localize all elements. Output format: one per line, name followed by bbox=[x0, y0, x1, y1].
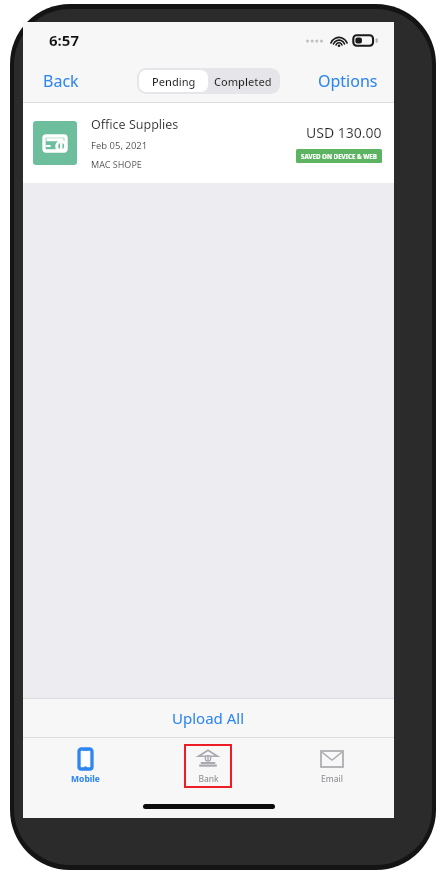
staticText: Feb 05, 2021 bbox=[91, 139, 148, 152]
staticText: SAVED ON DEVICE & WEB bbox=[301, 152, 377, 160]
staticText: MAC SHOPE bbox=[91, 158, 142, 170]
staticText: USD 130.00 bbox=[306, 123, 382, 142]
staticText: Completed bbox=[214, 74, 272, 89]
button[interactable]: Upload All bbox=[23, 698, 394, 738]
staticText: Office Supplies bbox=[91, 116, 179, 133]
button[interactable]: Options bbox=[304, 64, 394, 98]
staticText: Options bbox=[318, 70, 378, 92]
button[interactable]: Back bbox=[23, 64, 93, 98]
button[interactable]: Bank bbox=[184, 744, 232, 788]
staticText: Email bbox=[321, 773, 343, 785]
staticText: Bank bbox=[198, 773, 219, 785]
button[interactable]: Completed bbox=[208, 70, 278, 92]
staticText: 6:57 bbox=[49, 30, 79, 50]
staticText: Upload All bbox=[172, 708, 245, 728]
staticText: Back bbox=[43, 70, 79, 92]
button[interactable]: Email bbox=[308, 744, 356, 788]
staticText: Pending bbox=[152, 74, 196, 89]
staticText: Mobile bbox=[71, 773, 100, 785]
button[interactable]: Mobile bbox=[61, 744, 109, 788]
button[interactable]: Pending bbox=[139, 70, 208, 92]
button[interactable]: Office Supplies bbox=[23, 103, 394, 183]
